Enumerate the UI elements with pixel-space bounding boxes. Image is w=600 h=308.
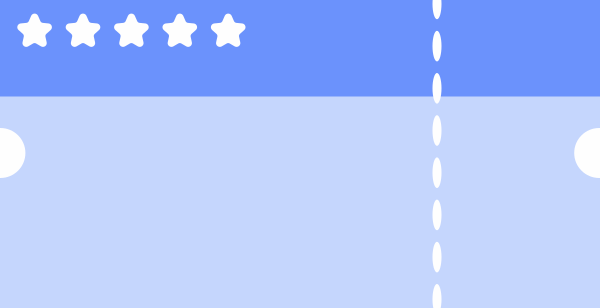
button[interactable]: Rate 2 stars	[0, 0, 600, 308]
button[interactable]: Rate 3 stars	[0, 0, 600, 308]
button[interactable]: Rate 1 star	[0, 0, 600, 308]
button[interactable]: Rate 4 stars	[0, 0, 600, 308]
button[interactable]: Rate 5 stars	[0, 0, 600, 308]
